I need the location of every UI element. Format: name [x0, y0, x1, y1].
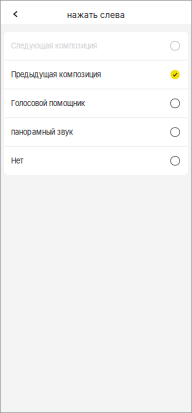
staticText: Следующая композиция	[11, 41, 97, 50]
staticText: нажать слева	[67, 10, 125, 20]
staticText: Предыдущая композиция	[11, 70, 101, 79]
button[interactable]: Голосовой помощник	[4, 89, 188, 117]
button[interactable]: Нет	[4, 147, 188, 175]
button[interactable]: панорамный звук	[4, 118, 188, 146]
staticText: Нет	[11, 156, 23, 165]
staticText: панорамный звук	[11, 128, 73, 136]
button[interactable]: Back	[0, 0, 26, 24]
button[interactable]: Предыдущая композиция	[4, 60, 188, 89]
button[interactable]: Следующая композиция	[4, 32, 188, 60]
staticText: Голосовой помощник	[11, 99, 85, 108]
